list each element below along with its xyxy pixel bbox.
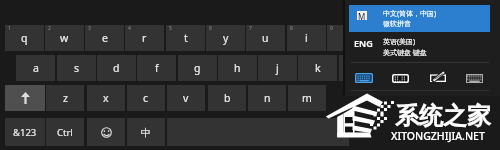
staticText: d (113, 61, 120, 75)
button[interactable]: Standard keyboard (462, 70, 487, 87)
staticText: f (155, 61, 159, 75)
button[interactable]: 5 (166, 25, 205, 51)
button[interactable]: Emoji (87, 118, 125, 146)
button[interactable]: d (97, 55, 136, 81)
button[interactable]: 2 (45, 25, 84, 51)
staticText: 3 (88, 25, 91, 32)
staticText: 中文(简体，中国) (383, 9, 437, 19)
staticText: l (357, 61, 360, 75)
staticText: q (21, 31, 28, 45)
button[interactable]: x (87, 85, 125, 111)
staticText: 9 (330, 25, 333, 32)
button[interactable]: Touch keyboard (351, 69, 377, 87)
staticText: z (63, 91, 68, 105)
button[interactable]: 4 (125, 25, 164, 51)
button[interactable]: s (57, 55, 96, 81)
staticText: &123 (13, 126, 37, 139)
staticText: 中 (141, 126, 151, 139)
staticText: j (276, 61, 279, 75)
button[interactable]: j (258, 55, 297, 81)
staticText: h (234, 61, 241, 75)
staticText: v (183, 91, 189, 105)
staticText: m (302, 91, 312, 105)
button[interactable]: l (339, 55, 378, 81)
button[interactable]: a (16, 55, 55, 81)
button[interactable]: Split keyboard (388, 70, 413, 87)
button[interactable]: 7 (246, 25, 285, 51)
button[interactable]: k (298, 55, 337, 81)
staticText: p (383, 31, 390, 45)
staticText: a (33, 61, 39, 75)
button[interactable]: m (288, 85, 326, 111)
button[interactable]: 9 (327, 25, 366, 51)
button[interactable] (167, 118, 349, 146)
staticText: x (103, 91, 109, 105)
staticText: 1 (8, 25, 11, 32)
staticText: w (60, 31, 69, 45)
button[interactable]: v (167, 85, 205, 111)
staticText: 美式键盘 键盘 (383, 48, 427, 58)
button[interactable]: f (137, 55, 176, 81)
staticText: 7 (249, 25, 252, 32)
staticText: c (143, 91, 149, 105)
button[interactable]: 8 (287, 25, 326, 51)
staticText: b (224, 91, 231, 105)
staticText: n (264, 91, 271, 105)
staticText: g (194, 61, 201, 75)
staticText: 系统之家 (395, 101, 491, 131)
button[interactable]: b (208, 85, 246, 111)
staticText: Ctrl (57, 126, 73, 139)
staticText: 5 (169, 25, 172, 32)
button[interactable]: Ctrl (46, 118, 84, 146)
staticText: 8 (290, 25, 293, 32)
staticText: e (102, 31, 108, 45)
staticText: M (358, 11, 366, 20)
staticText: 2 (48, 25, 51, 32)
button[interactable]: 3 (85, 25, 124, 51)
staticText: 4 (128, 25, 131, 32)
staticText: XITONGZHIJIA.NET (391, 129, 485, 143)
button[interactable]: c (127, 85, 165, 111)
staticText: y (223, 31, 229, 45)
staticText: 英语(美国) (383, 37, 416, 47)
button[interactable]: 中 (127, 118, 165, 146)
button[interactable]: Handwriting (426, 68, 450, 86)
button[interactable]: 6 (206, 25, 245, 51)
staticText: ENG (354, 37, 373, 49)
button[interactable]: 0 (367, 25, 406, 51)
staticText: t (184, 31, 188, 45)
button[interactable]: ENG (349, 33, 490, 59)
button[interactable]: Shift (5, 85, 45, 111)
button[interactable]: g (178, 55, 217, 81)
staticText: k (315, 61, 321, 75)
staticText: r (142, 31, 147, 45)
button[interactable]: h (218, 55, 257, 81)
staticText: u (262, 31, 269, 45)
button[interactable]: n (248, 85, 286, 111)
staticText: 微软拼音 (383, 19, 411, 28)
staticText: i (305, 31, 308, 45)
button[interactable]: M (349, 5, 490, 32)
button[interactable]: &123 (5, 118, 45, 146)
staticText: 6 (209, 25, 212, 32)
button[interactable]: 1 (5, 25, 44, 51)
button[interactable]: z (46, 85, 84, 111)
staticText: o (343, 31, 350, 45)
staticText: s (74, 61, 80, 75)
